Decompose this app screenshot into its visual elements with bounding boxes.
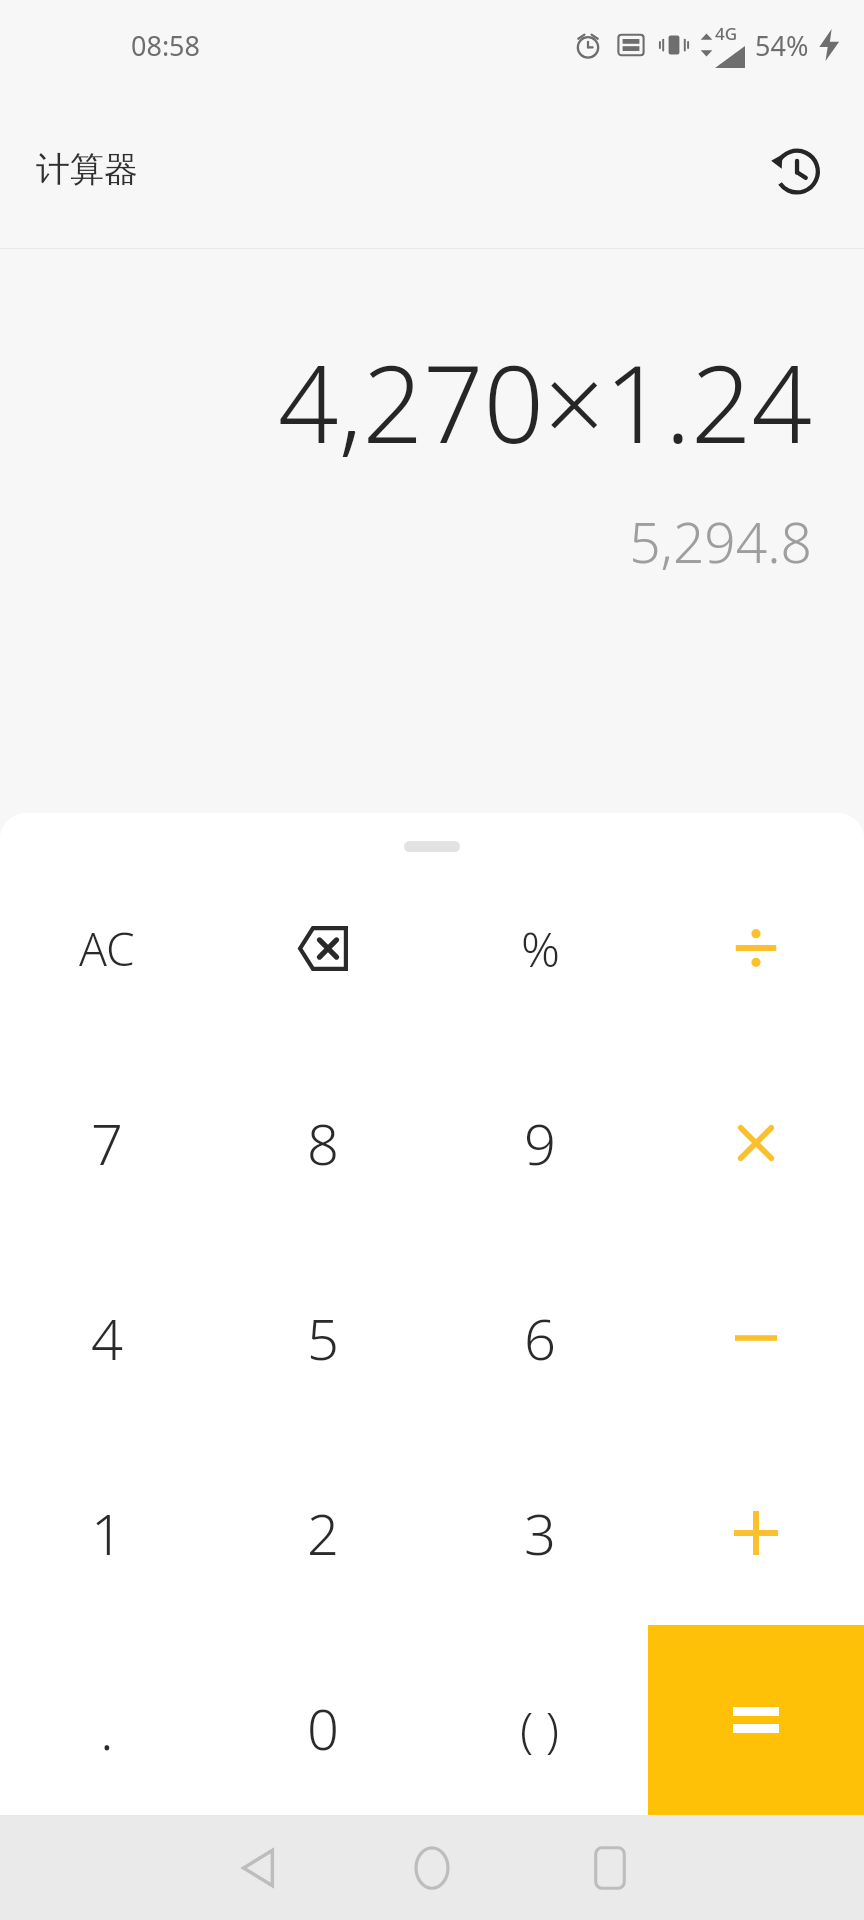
staticText: ( ) bbox=[520, 1696, 560, 1761]
button[interactable]: Divide bbox=[648, 851, 864, 1045]
button[interactable]: 1 bbox=[0, 1436, 215, 1630]
button[interactable]: 8 bbox=[215, 1046, 431, 1240]
button[interactable]: 7 bbox=[0, 1046, 215, 1240]
staticText: 4 bbox=[91, 1300, 123, 1376]
button[interactable]: % bbox=[432, 851, 648, 1045]
button[interactable]: 6 bbox=[432, 1241, 648, 1435]
button[interactable]: Minus bbox=[648, 1241, 864, 1435]
button[interactable]: 0 bbox=[215, 1631, 431, 1815]
button[interactable]: 2 bbox=[215, 1436, 431, 1630]
button[interactable]: ( ) bbox=[432, 1631, 648, 1815]
staticText: 9 bbox=[524, 1105, 556, 1181]
button[interactable]: Home bbox=[374, 1815, 490, 1920]
button[interactable]: 9 bbox=[432, 1046, 648, 1240]
staticText: 3 bbox=[524, 1495, 556, 1571]
button[interactable]: History bbox=[752, 125, 840, 213]
button[interactable]: AC bbox=[0, 851, 215, 1045]
staticText: 2 bbox=[307, 1495, 339, 1571]
staticText: . bbox=[100, 1690, 114, 1766]
button[interactable]: 3 bbox=[432, 1436, 648, 1630]
button[interactable]: Recents bbox=[552, 1815, 668, 1920]
staticText: 0 bbox=[307, 1690, 339, 1766]
staticText: 5,294.8 bbox=[629, 504, 812, 579]
button[interactable]: . bbox=[0, 1631, 215, 1815]
staticText: % bbox=[521, 916, 560, 981]
staticText: 计算器 bbox=[36, 148, 138, 191]
button[interactable]: Backspace bbox=[215, 851, 431, 1045]
staticText: AC bbox=[79, 917, 135, 980]
button[interactable]: Plus bbox=[648, 1436, 864, 1630]
staticText: 08:58 bbox=[131, 27, 201, 64]
staticText: 8 bbox=[307, 1105, 339, 1181]
staticText: 4G bbox=[715, 22, 738, 45]
staticText: 54% bbox=[755, 27, 809, 64]
staticText: 1 bbox=[91, 1495, 123, 1571]
staticText: 5 bbox=[307, 1300, 339, 1376]
staticText: 4,270×1.24 bbox=[278, 330, 812, 474]
button[interactable]: 5 bbox=[215, 1241, 431, 1435]
button[interactable] bbox=[648, 1625, 864, 1815]
button[interactable]: Back bbox=[200, 1815, 316, 1920]
staticText: 7 bbox=[91, 1105, 123, 1181]
button[interactable]: Multiply bbox=[648, 1046, 864, 1240]
staticText: 6 bbox=[524, 1300, 556, 1376]
button[interactable]: 4 bbox=[0, 1241, 215, 1435]
